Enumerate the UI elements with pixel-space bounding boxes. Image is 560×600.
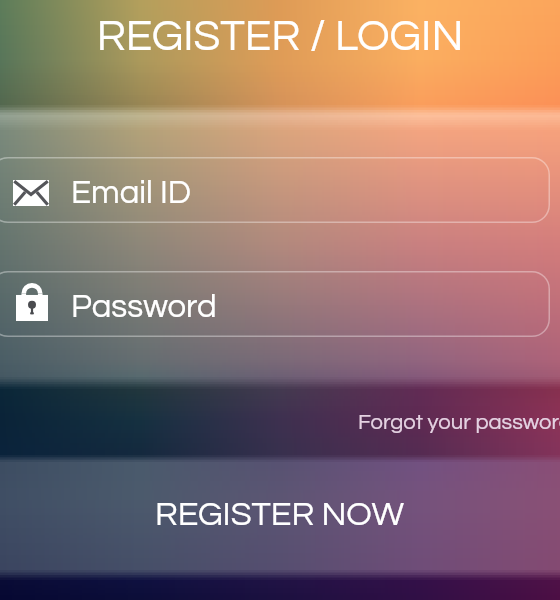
button[interactable]: REGISTER NOW bbox=[0, 455, 560, 573]
button[interactable]: Forgot your password bbox=[358, 411, 560, 434]
staticText: Password bbox=[71, 290, 217, 324]
staticText: REGISTER NOW bbox=[155, 497, 405, 532]
button[interactable] bbox=[0, 157, 550, 223]
staticText: REGISTER / LOGIN bbox=[0, 14, 560, 59]
staticText: Email ID bbox=[71, 176, 191, 210]
button[interactable] bbox=[0, 271, 550, 337]
